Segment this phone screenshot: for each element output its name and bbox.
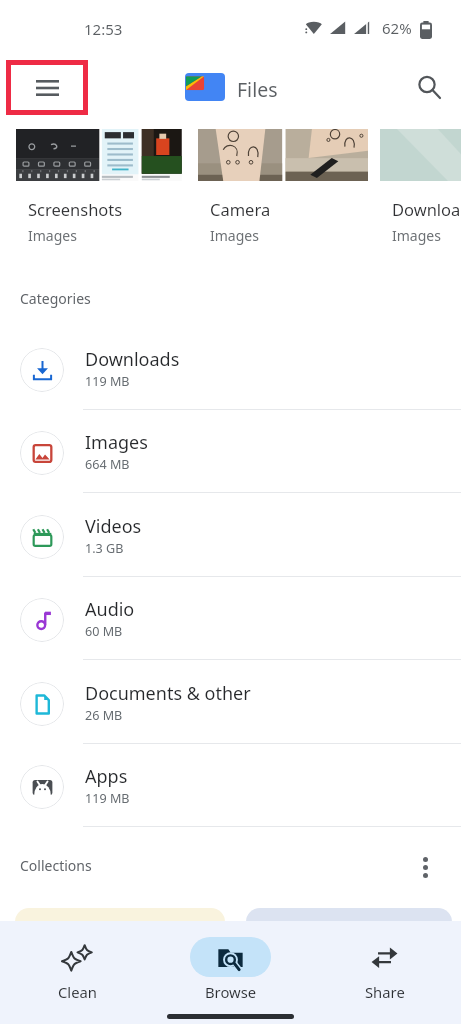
button[interactable]: Open navigation drawer [6, 60, 88, 115]
staticText: Videos [85, 514, 142, 539]
button[interactable] [246, 908, 452, 948]
staticText: Categories [20, 289, 91, 308]
button[interactable]: Images [0, 410, 461, 493]
button[interactable]: Clean [37, 937, 118, 1002]
staticText: 1.3 GB [85, 540, 124, 557]
staticText: Documents & other [85, 681, 251, 706]
staticText: Images [85, 430, 148, 455]
staticText: Camera [210, 198, 271, 220]
button[interactable]: Apps [0, 744, 461, 827]
staticText: Downloads [85, 347, 180, 372]
staticText: Images [28, 226, 77, 245]
button[interactable]: Screenshots [16, 129, 186, 263]
button[interactable]: Browse [190, 937, 271, 1002]
staticText: 119 MB [85, 790, 130, 807]
button[interactable]: Downloads [380, 129, 461, 263]
button[interactable]: More options [405, 847, 445, 887]
button[interactable]: Camera [198, 129, 368, 263]
button[interactable]: Share [344, 937, 425, 1002]
staticText: 62% [382, 18, 412, 38]
staticText: 60 MB [85, 623, 123, 640]
staticText: 119 MB [85, 373, 130, 390]
staticText: Audio [85, 597, 135, 622]
staticText: Downloads [392, 198, 461, 220]
button[interactable]: Audio [0, 577, 461, 660]
button[interactable]: Videos [0, 494, 461, 577]
staticText: Screenshots [28, 198, 123, 220]
button[interactable]: Documents & other [0, 661, 461, 744]
staticText: Apps [85, 764, 128, 789]
staticText: Share [365, 982, 405, 1002]
staticText: Clean [58, 982, 97, 1002]
staticText: 664 MB [85, 456, 130, 473]
staticText: Images [392, 226, 441, 245]
button[interactable] [15, 908, 225, 948]
staticText: Collections [20, 856, 92, 875]
button[interactable]: Search [405, 63, 453, 111]
staticText: Files [237, 76, 278, 103]
button[interactable]: Downloads [0, 327, 461, 410]
staticText: Browse [205, 982, 257, 1002]
staticText: 12:53 [84, 19, 123, 39]
staticText: Images [210, 226, 259, 245]
staticText: 26 MB [85, 707, 123, 724]
